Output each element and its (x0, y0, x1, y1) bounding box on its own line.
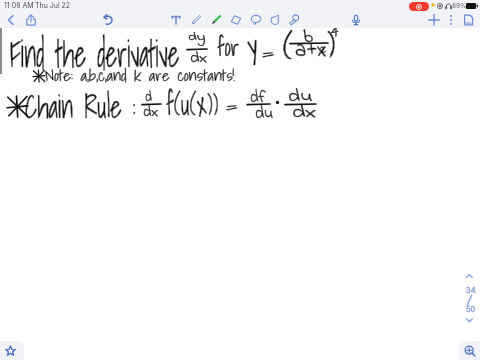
staticText: a+x (295, 33, 327, 68)
button[interactable]: Stamp (285, 11, 303, 29)
button[interactable]: Highlighter (207, 11, 225, 29)
button[interactable]: Zoom in (459, 341, 480, 360)
staticText: dx (190, 46, 208, 69)
staticText: 50 (466, 305, 476, 314)
button[interactable]: Page navigation (458, 270, 480, 328)
staticText: 11:08 AM (4, 1, 34, 9)
staticText: 34 (466, 286, 476, 295)
staticText: y (247, 22, 257, 67)
staticText: a+x (295, 33, 327, 68)
staticText: d (145, 87, 152, 107)
staticText: = (262, 38, 274, 67)
staticText: du (255, 101, 274, 126)
staticText: = (226, 91, 238, 120)
button[interactable]: More options (442, 11, 460, 29)
staticText: 89% (452, 2, 467, 10)
staticText: 2 (320, 40, 327, 58)
staticText: dx (143, 101, 159, 123)
staticText: ) (327, 17, 336, 74)
staticText: dx (143, 101, 159, 123)
staticText: dx (190, 46, 208, 69)
staticText: ( (283, 18, 293, 75)
staticText: ( (283, 18, 293, 75)
button[interactable]: Pen (187, 11, 205, 29)
staticText: for (217, 29, 240, 66)
button[interactable]: Lasso (247, 11, 265, 29)
staticText: df (250, 85, 266, 110)
button[interactable]: Record audio (347, 11, 365, 29)
staticText: du (288, 84, 313, 110)
staticText: Note: a,b,c,and k are constants! (45, 65, 235, 87)
staticText: du (288, 84, 313, 110)
button[interactable]: Add (425, 11, 443, 29)
staticText: Find the derivative (10, 24, 180, 81)
staticText: Chain Rule : (25, 82, 136, 132)
staticText: Note: a,b,c,and k are constants! (45, 65, 235, 87)
staticText: Chain Rule : (25, 82, 136, 132)
button[interactable]: Eraser (227, 11, 245, 29)
button[interactable]: Cut (266, 11, 284, 29)
staticText: f(u(x)) (166, 81, 219, 128)
staticText: b (303, 24, 314, 52)
staticText: for (217, 29, 240, 66)
button[interactable]: Favorite (0, 341, 24, 360)
staticText: dx (292, 100, 317, 126)
staticText: 4 (331, 21, 339, 42)
staticText: f(u(x)) (166, 81, 219, 128)
staticText: y (247, 22, 257, 67)
staticText: Thu Jul 22 (35, 1, 71, 9)
button[interactable]: Text tool (167, 11, 185, 29)
button[interactable]: Undo (99, 11, 117, 29)
staticText: = (262, 38, 274, 67)
button[interactable]: Pages (459, 11, 477, 29)
staticText: d (145, 87, 152, 107)
staticText: dy (188, 29, 206, 46)
staticText: = (226, 91, 238, 120)
button[interactable]: Share (22, 11, 40, 29)
staticText: dx (292, 100, 317, 126)
staticText: Find the derivative (10, 24, 180, 81)
staticText: df (250, 85, 266, 110)
staticText: b (303, 24, 314, 52)
staticText: 2 (320, 40, 327, 58)
staticText: dy (188, 29, 206, 46)
staticText: ) (327, 17, 336, 74)
staticText: du (255, 101, 274, 126)
staticText: 4 (331, 21, 339, 42)
button[interactable]: Back (2, 11, 20, 29)
